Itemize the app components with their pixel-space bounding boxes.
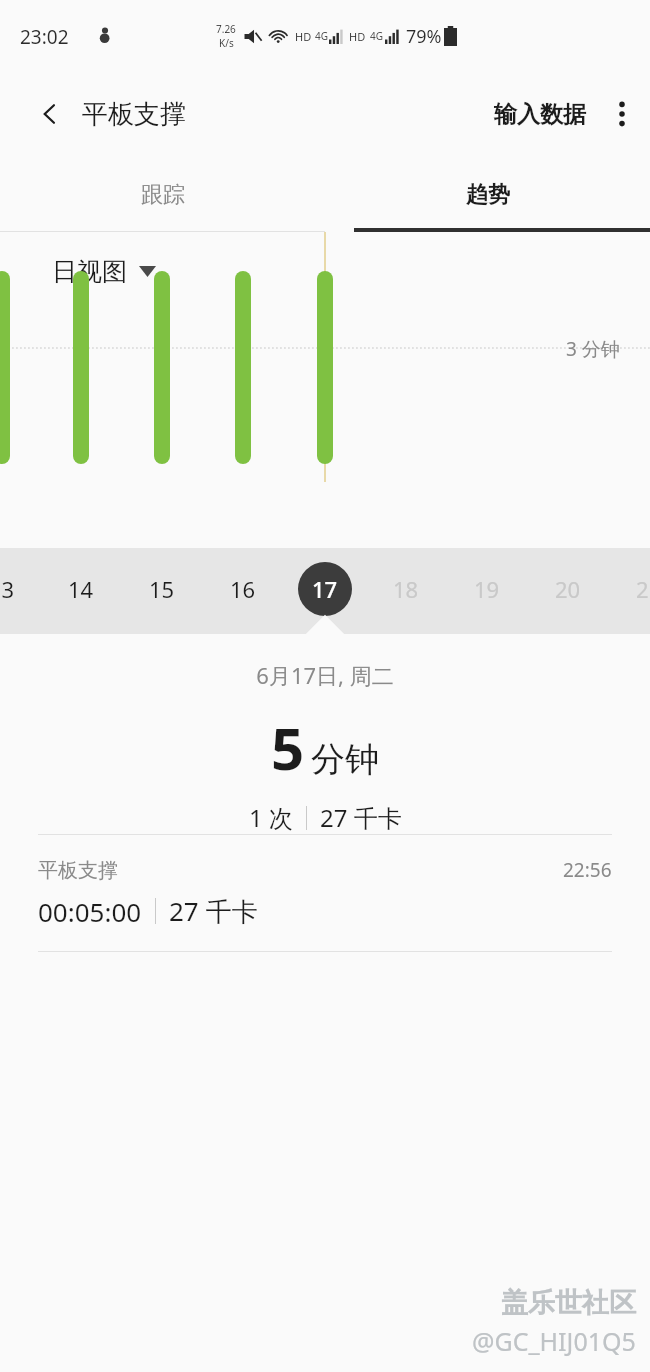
staticText: 盖乐世社区 [501, 1286, 636, 1320]
staticText: 21 [636, 574, 650, 604]
staticText: 跟踪 [141, 181, 185, 209]
staticText: 20 [555, 574, 581, 604]
staticText: 79% [406, 24, 442, 49]
staticText: K/s [219, 36, 234, 50]
staticText: 19 [474, 574, 500, 604]
button[interactable]: 21 [622, 562, 650, 616]
button[interactable]: 平板支撑 [0, 835, 650, 951]
button[interactable]: 19 [460, 562, 514, 616]
staticText: 27 千卡 [320, 801, 402, 834]
staticText: 7.26 [216, 22, 236, 36]
staticText: 日视图 [52, 256, 127, 287]
button[interactable]: More options [600, 92, 644, 136]
button[interactable]: 16 [216, 562, 270, 616]
staticText: 27 千卡 [169, 893, 258, 929]
staticText: 18 [393, 574, 419, 604]
button[interactable]: 20 [541, 562, 595, 616]
staticText: 趋势 [466, 181, 510, 209]
staticText: 分钟 [311, 738, 379, 781]
staticText: 4G [370, 29, 383, 43]
button[interactable]: 17 [298, 562, 352, 616]
staticText: @GC_HIJ01Q5 [472, 1324, 636, 1358]
staticText: HD [349, 29, 366, 44]
staticText: 13 [0, 574, 15, 604]
staticText: 3 分钟 [566, 336, 620, 362]
button[interactable]: 趋势 [325, 158, 650, 232]
button[interactable]: 15 [135, 562, 189, 616]
staticText: 5 [271, 708, 305, 787]
staticText: 00:05:00 [38, 894, 142, 929]
staticText: 1 次 [249, 801, 293, 834]
staticText: 23:02 [20, 24, 69, 50]
button[interactable]: 13 [0, 562, 29, 616]
staticText: 平板支撑 [38, 858, 118, 883]
staticText: 17 [312, 574, 338, 604]
button[interactable]: Back [26, 90, 74, 138]
staticText: HD [295, 29, 312, 44]
button[interactable]: 输入数据 [490, 92, 590, 137]
staticText: 6月17日, 周二 [256, 660, 394, 690]
staticText: 14 [68, 574, 94, 604]
button[interactable]: 18 [379, 562, 433, 616]
staticText: 22:56 [563, 857, 612, 883]
staticText: 平板支撑 [82, 98, 186, 131]
button[interactable]: 日视图 [46, 250, 162, 293]
staticText: 16 [230, 574, 256, 604]
staticText: 4G [315, 29, 328, 43]
staticText: 15 [149, 574, 175, 604]
button[interactable]: 14 [54, 562, 108, 616]
button[interactable]: 跟踪 [0, 158, 325, 232]
